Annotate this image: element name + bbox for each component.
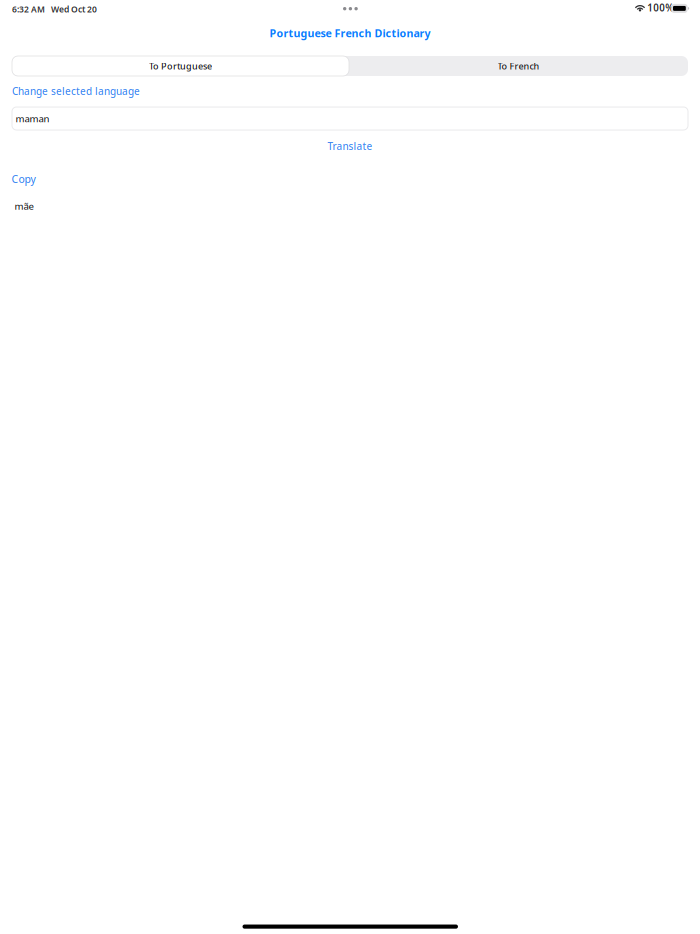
- staticText: To French: [497, 60, 539, 72]
- button[interactable]: To French: [349, 56, 688, 76]
- button[interactable]: Copy: [12, 170, 688, 188]
- staticText: Portuguese French Dictionary: [269, 26, 430, 40]
- staticText: Change selected language: [12, 84, 140, 98]
- staticText: Wed Oct 20: [45, 3, 97, 15]
- staticText: Copy: [12, 172, 36, 186]
- staticText: To Portuguese: [149, 60, 212, 72]
- staticText: maman: [16, 112, 50, 125]
- button[interactable]: Change selected language: [12, 82, 688, 100]
- staticText: Translate: [327, 139, 372, 153]
- button[interactable]: Translate: [12, 137, 688, 155]
- staticText: mãe: [14, 199, 33, 213]
- staticText: 6:32 AM: [12, 3, 45, 15]
- staticText: 100%: [647, 1, 674, 14]
- button[interactable]: To Portuguese: [12, 56, 349, 76]
